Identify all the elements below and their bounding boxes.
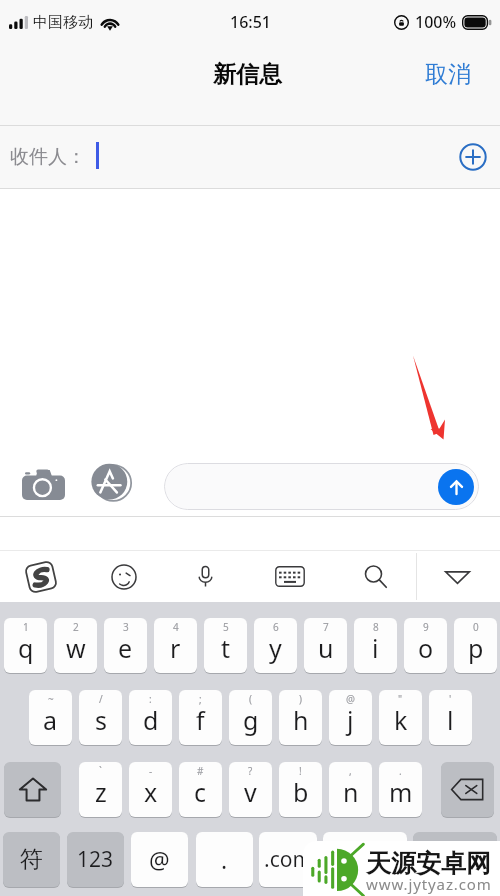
staticText: b xyxy=(293,775,309,809)
button[interactable]: Camera xyxy=(8,458,78,508)
staticText: 0 xyxy=(473,620,479,634)
staticText: " xyxy=(398,692,403,706)
button[interactable]: 6 xyxy=(254,618,297,673)
button[interactable]: Send xyxy=(438,469,474,505)
staticText: 6 xyxy=(273,620,279,634)
staticText: x xyxy=(144,775,158,809)
staticText: ( xyxy=(249,692,252,706)
button[interactable]: 123 xyxy=(67,832,124,887)
staticText: 符 xyxy=(20,845,43,874)
button[interactable]: @ xyxy=(131,832,188,887)
button[interactable]: .com xyxy=(259,832,317,887)
button[interactable]: 5 xyxy=(204,618,247,673)
staticText: 收件人： xyxy=(10,145,86,169)
staticText: n xyxy=(343,775,359,809)
button[interactable]: 2 xyxy=(54,618,97,673)
staticText: ? xyxy=(248,764,253,778)
button[interactable]: Sogou input method xyxy=(3,551,79,602)
staticText: l xyxy=(447,703,454,737)
button[interactable]: 符 xyxy=(3,832,60,887)
button[interactable]: " xyxy=(379,690,422,745)
button[interactable]: ( xyxy=(229,690,272,745)
button[interactable]: Send xyxy=(164,463,479,510)
staticText: m xyxy=(389,775,413,809)
button[interactable]: Voice input xyxy=(167,551,243,602)
staticText: 2 xyxy=(73,620,79,634)
staticText: , xyxy=(349,764,352,778)
staticText: f xyxy=(196,703,205,737)
staticText: 5 xyxy=(223,620,229,634)
button[interactable]: ? xyxy=(229,762,272,817)
button[interactable]: ` xyxy=(79,762,122,817)
staticText: r xyxy=(170,631,181,665)
button[interactable]: Keyboard xyxy=(252,551,328,602)
staticText: : xyxy=(149,692,152,706)
button[interactable]: 收件人： xyxy=(0,126,500,188)
staticText: / xyxy=(99,692,103,706)
staticText: 7 xyxy=(323,620,329,634)
staticText: v xyxy=(244,775,257,809)
staticText: @ xyxy=(149,844,170,875)
button[interactable]: 7 xyxy=(304,618,347,673)
staticText: g xyxy=(243,703,259,737)
staticText: 8 xyxy=(373,620,379,634)
staticText: k xyxy=(394,703,408,737)
staticText: 123 xyxy=(77,845,114,874)
button[interactable]: @ xyxy=(329,690,372,745)
button[interactable]: Hide keyboard xyxy=(419,551,495,602)
staticText: 1 xyxy=(23,620,29,634)
staticText: 中国移动 xyxy=(33,13,93,32)
button[interactable]: # xyxy=(179,762,222,817)
button[interactable]: Backspace xyxy=(441,762,494,817)
staticText: ' xyxy=(449,692,452,706)
button[interactable]: ; xyxy=(179,690,222,745)
button[interactable]: Key xyxy=(323,832,407,887)
staticText: ~ xyxy=(48,692,54,706)
button[interactable]: 0 xyxy=(454,618,497,673)
staticText: d xyxy=(143,703,159,737)
button[interactable]: ! xyxy=(279,762,322,817)
button[interactable]: 取消 xyxy=(411,50,485,99)
button[interactable]: 1 xyxy=(4,618,47,673)
staticText: ! xyxy=(299,764,302,778)
staticText: 天源安卓网 xyxy=(366,848,491,879)
button[interactable]: 3 xyxy=(104,618,147,673)
staticText: p xyxy=(468,631,484,665)
staticText: 9 xyxy=(423,620,429,634)
staticText: @ xyxy=(346,692,355,706)
staticText: 16:51 xyxy=(230,11,271,33)
button[interactable]: ) xyxy=(279,690,322,745)
button[interactable]: ' xyxy=(429,690,472,745)
staticText: www.jytyaz.com xyxy=(366,874,492,894)
staticText: ) xyxy=(299,692,302,706)
button[interactable]: Emoji xyxy=(86,551,162,602)
staticText: 3 xyxy=(123,620,129,634)
button[interactable]: Key xyxy=(413,832,497,887)
staticText: j xyxy=(347,703,354,737)
button[interactable]: Shift xyxy=(4,762,61,817)
staticText: h xyxy=(293,703,309,737)
button[interactable]: 8 xyxy=(354,618,397,673)
button[interactable]: 9 xyxy=(404,618,447,673)
button[interactable]: . xyxy=(379,762,422,817)
staticText: 取消 xyxy=(425,60,471,89)
button[interactable]: 4 xyxy=(154,618,197,673)
button[interactable]: . xyxy=(196,832,253,887)
button[interactable]: : xyxy=(129,690,172,745)
button[interactable]: , xyxy=(329,762,372,817)
staticText: q xyxy=(18,631,34,665)
button[interactable]: - xyxy=(129,762,172,817)
staticText: ; xyxy=(199,692,202,706)
staticText: # xyxy=(197,764,204,778)
staticText: a xyxy=(43,703,58,737)
button[interactable]: ~ xyxy=(29,690,72,745)
staticText: s xyxy=(95,703,107,737)
staticText: ` xyxy=(99,764,102,778)
button[interactable]: App Store xyxy=(84,458,142,508)
staticText: o xyxy=(418,631,434,665)
staticText: . xyxy=(221,844,228,875)
button[interactable]: / xyxy=(79,690,122,745)
staticText: e xyxy=(118,631,133,665)
button[interactable]: Search xyxy=(337,551,413,602)
button[interactable]: Add contact xyxy=(459,143,487,171)
